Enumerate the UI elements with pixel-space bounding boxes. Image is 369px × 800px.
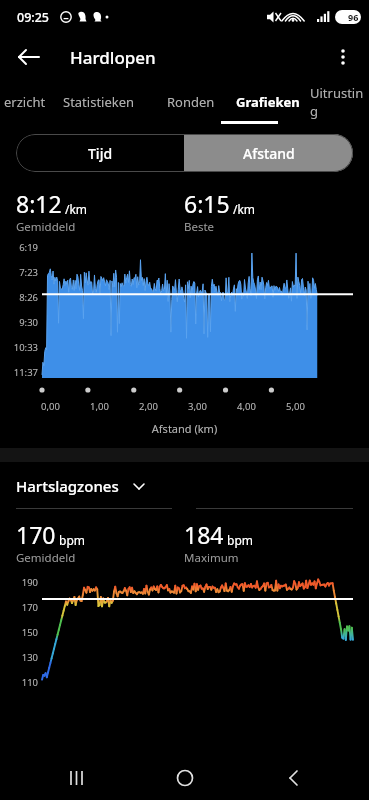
staticText: 9:30 — [0, 316, 38, 329]
staticText: 10:33 — [0, 341, 38, 354]
staticText: 7:23 — [0, 266, 38, 279]
staticText: bpm — [59, 532, 85, 548]
staticText: Grafieken — [236, 93, 300, 111]
staticText: Gemiddeld — [16, 550, 76, 566]
staticText: 3,00 — [173, 400, 222, 413]
button[interactable]: Uitrusting — [306, 80, 369, 124]
staticText: Afstand (km) — [0, 421, 369, 436]
staticText: Statistieken — [63, 93, 135, 111]
staticText: Hardlopen — [70, 46, 156, 69]
button[interactable]: Home — [155, 756, 215, 800]
staticText: 2,00 — [124, 400, 173, 413]
staticText: Hartslagzones — [16, 476, 119, 496]
staticText: 6:19 — [0, 241, 38, 254]
staticText: 09:25 — [17, 9, 50, 26]
staticText: Afstand — [243, 144, 295, 163]
button[interactable]: Recent apps — [47, 756, 107, 800]
staticText: /km — [65, 201, 88, 217]
staticText: 170 — [0, 601, 38, 614]
staticText: 190 — [0, 576, 38, 589]
staticText: 11:37 — [0, 366, 38, 379]
staticText: 0,00 — [26, 400, 75, 413]
button[interactable]: Statistieken — [46, 80, 152, 124]
staticText: 8:26 — [0, 291, 38, 304]
staticText: Ronden — [167, 93, 215, 111]
staticText: Uitrusting — [310, 84, 369, 120]
staticText: 150 — [0, 626, 38, 639]
button[interactable]: Grafieken — [230, 80, 306, 124]
staticText: Tijd — [88, 144, 113, 163]
staticText: 4,00 — [222, 400, 271, 413]
staticText: Gemiddeld — [16, 219, 76, 235]
button[interactable]: Ronden — [152, 80, 230, 124]
button[interactable]: Hartslagzones — [16, 476, 353, 496]
staticText: erzicht — [4, 93, 46, 111]
staticText: Beste — [184, 219, 215, 235]
button[interactable]: erzicht — [0, 80, 46, 124]
button[interactable]: More options — [323, 37, 363, 77]
staticText: 110 — [0, 676, 38, 689]
button[interactable]: Tijd — [16, 134, 184, 172]
staticText: 6:15 — [184, 188, 230, 219]
button[interactable]: Afstand — [184, 134, 353, 172]
staticText: 130 — [0, 651, 38, 664]
staticText: 170 — [16, 519, 56, 550]
staticText: 184 — [184, 519, 224, 550]
button[interactable]: Back — [8, 37, 48, 77]
staticText: 5,00 — [271, 400, 320, 413]
staticText: bpm — [227, 532, 253, 548]
staticText: /km — [233, 201, 256, 217]
staticText: 96 — [348, 11, 359, 23]
staticText: 8:12 — [16, 188, 62, 219]
staticText: 1,00 — [75, 400, 124, 413]
button[interactable]: Back — [262, 756, 322, 800]
staticText: Maximum — [184, 550, 239, 566]
